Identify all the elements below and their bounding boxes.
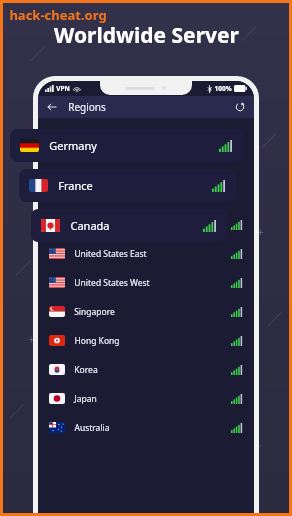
button[interactable]: Netherlands bbox=[38, 210, 254, 239]
staticText: Japan bbox=[74, 393, 97, 405]
button[interactable]: Germany bbox=[10, 129, 243, 162]
button[interactable]: Australia bbox=[38, 413, 254, 442]
button[interactable]: Refresh bbox=[231, 98, 249, 116]
staticText: Korea bbox=[74, 364, 98, 376]
staticText: VPN bbox=[56, 84, 70, 93]
button[interactable]: Hong Kong bbox=[38, 326, 254, 355]
button[interactable]: United States West bbox=[38, 268, 254, 297]
staticText: Hong Kong bbox=[74, 335, 120, 347]
button[interactable]: Japan bbox=[38, 384, 254, 413]
button[interactable]: Canada bbox=[31, 209, 227, 242]
staticText: hack-cheat.org bbox=[9, 6, 107, 24]
staticText: 100% bbox=[214, 84, 232, 93]
button[interactable]: Back bbox=[43, 98, 61, 116]
staticText: Australia bbox=[74, 422, 110, 434]
staticText: Netherlands bbox=[74, 219, 124, 231]
button[interactable]: Singapore bbox=[38, 297, 254, 326]
staticText: Regions bbox=[68, 100, 106, 114]
staticText: Canada bbox=[70, 218, 110, 233]
staticText: Worldwide Server bbox=[54, 21, 239, 50]
button[interactable]: United States East bbox=[38, 239, 254, 268]
staticText: Singapore bbox=[74, 306, 115, 318]
staticText: United States West bbox=[74, 277, 150, 289]
button[interactable]: Korea bbox=[38, 355, 254, 384]
staticText: Germany bbox=[49, 138, 97, 153]
staticText: United States East bbox=[74, 248, 147, 260]
button[interactable]: France bbox=[19, 169, 236, 202]
staticText: France bbox=[58, 178, 93, 193]
